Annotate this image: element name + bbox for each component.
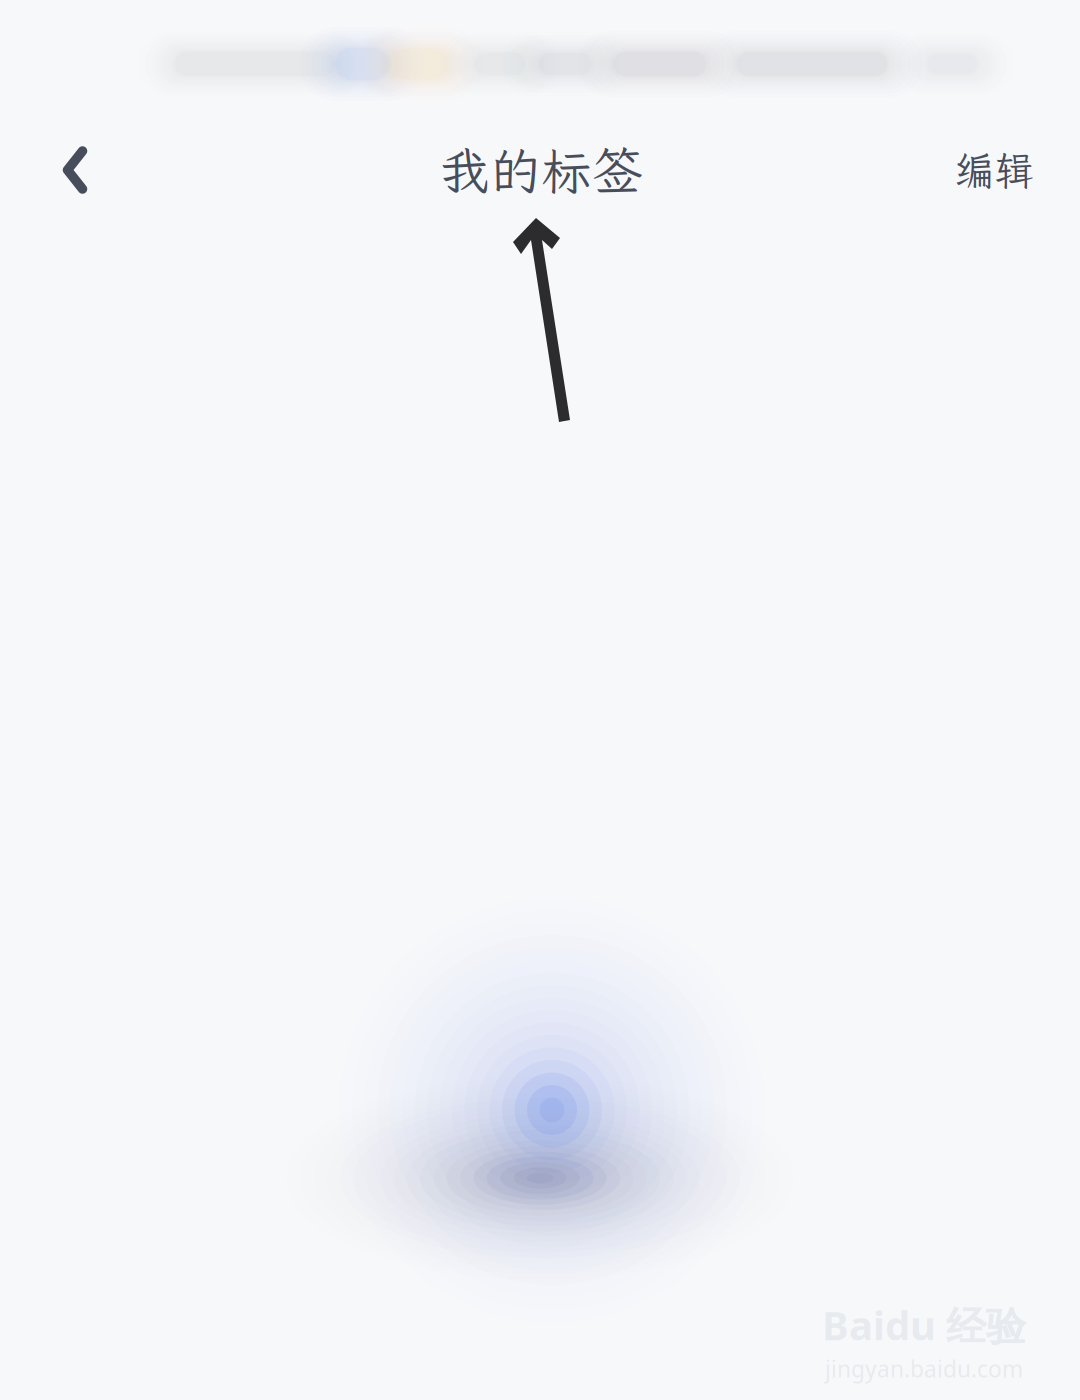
staticText: 我的标签 [439, 137, 643, 203]
button[interactable]: 编辑 [910, 118, 1078, 222]
staticText: Baidu 经验 [822, 1298, 1026, 1352]
staticText: 编辑 [954, 144, 1034, 196]
button[interactable]: Back [15, 118, 135, 222]
staticText: jingyan.baidu.com [825, 1354, 1023, 1384]
